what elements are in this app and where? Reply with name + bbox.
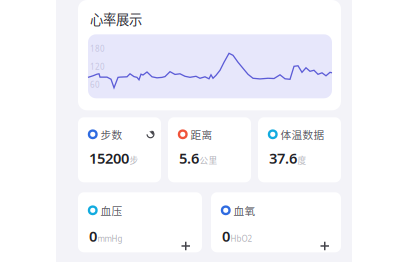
button[interactable]: 距离 (168, 117, 251, 182)
staticText: 血压 (100, 203, 122, 218)
staticText: 5.6 (179, 148, 199, 168)
staticText: 步 (129, 154, 138, 166)
staticText: mmHg (97, 233, 122, 244)
staticText: 180 (90, 43, 105, 54)
staticText: 公里 (199, 154, 217, 166)
staticText: 0 (89, 226, 97, 246)
staticText: 120 (90, 61, 105, 72)
staticText: 心率展示 (90, 9, 142, 28)
staticText: 15200 (89, 148, 129, 168)
staticText: 37.6 (269, 148, 297, 168)
staticText: 0 (222, 226, 230, 246)
staticText: 体温数据 (280, 127, 324, 142)
staticText: HbO2 (230, 233, 252, 244)
staticText: 度 (297, 154, 306, 166)
button[interactable]: 体温数据 (258, 117, 341, 182)
button[interactable]: 步数 (78, 117, 161, 182)
staticText: 步数 (100, 127, 122, 142)
button[interactable]: 血压 (78, 192, 202, 252)
staticText: 血氧 (233, 203, 255, 218)
staticText: 60 (90, 79, 100, 90)
button[interactable]: 血氧 (211, 192, 341, 252)
staticText: 距离 (190, 127, 212, 142)
